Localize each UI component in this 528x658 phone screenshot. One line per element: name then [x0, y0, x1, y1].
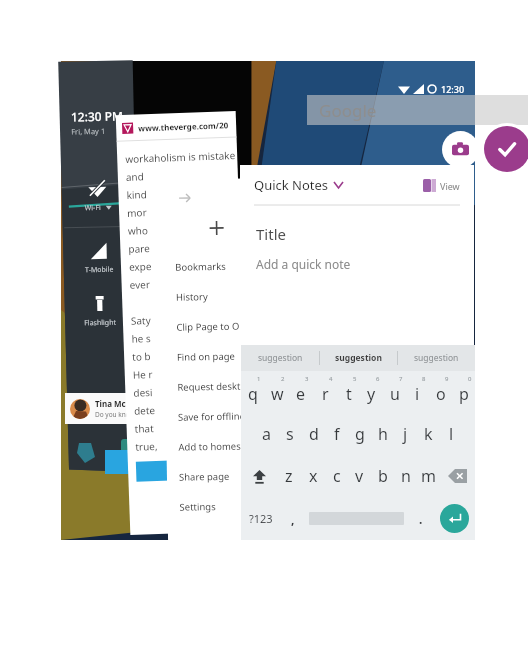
button[interactable]: Backspace	[440, 455, 475, 497]
button[interactable]: Add a quick note	[256, 256, 351, 272]
staticText: 6	[376, 375, 380, 383]
staticText: Settings	[179, 500, 217, 514]
button[interactable]: 0	[452, 371, 475, 413]
staticText: www.theverge.com/20	[138, 119, 229, 133]
staticText: e	[296, 383, 306, 405]
button[interactable]: 9	[429, 371, 452, 413]
button[interactable]: T-Mobile	[60, 241, 137, 276]
button[interactable]: b	[371, 455, 394, 497]
button[interactable]: Done	[484, 126, 528, 172]
button[interactable]: z	[277, 455, 301, 497]
button[interactable]: 6	[360, 371, 383, 413]
button[interactable]: Voice search	[501, 129, 519, 147]
button[interactable]: suggestion	[398, 345, 475, 371]
button[interactable]: suggestion	[241, 345, 319, 371]
button[interactable]: Request desktop si	[165, 370, 274, 402]
staticText: 3	[305, 375, 309, 383]
button[interactable]: Bookmark	[240, 188, 256, 205]
button[interactable]: k	[417, 413, 440, 455]
staticText: suggestion	[335, 352, 382, 364]
button[interactable]: Share page	[167, 460, 275, 492]
button[interactable]: Google	[307, 95, 528, 125]
staticText: n	[401, 465, 411, 487]
button[interactable]: 4	[313, 371, 337, 413]
button[interactable]: Enter	[440, 504, 469, 533]
button[interactable]: Save for offline rea	[166, 400, 274, 432]
button[interactable]: 2	[265, 371, 289, 413]
staticText: u	[390, 383, 400, 405]
button[interactable]: Clip Page to OneNo	[164, 310, 273, 342]
button[interactable]: Find on page	[165, 340, 273, 372]
staticText: Google	[319, 99, 377, 122]
staticText: q	[248, 383, 258, 405]
button[interactable]: Camera	[442, 131, 479, 168]
staticText: Share page	[179, 470, 230, 484]
button[interactable]: Tina McB	[65, 393, 149, 424]
staticText: h	[378, 423, 388, 445]
staticText: Find on page	[177, 350, 236, 364]
staticText: r	[322, 383, 329, 405]
button[interactable]: Title	[256, 224, 286, 244]
button[interactable]: g	[348, 413, 371, 455]
button[interactable]: 7	[383, 371, 406, 413]
button[interactable]: Add to homescreen	[166, 430, 275, 462]
button[interactable]: h	[371, 413, 394, 455]
staticText: 1	[257, 375, 261, 383]
staticText: that	[134, 421, 155, 436]
staticText: he s	[131, 331, 152, 346]
staticText: b	[378, 465, 388, 487]
button[interactable]: c	[325, 455, 348, 497]
button[interactable]: s	[278, 413, 302, 455]
staticText: suggestion	[258, 352, 303, 364]
staticText: Do you kno	[95, 410, 130, 419]
button[interactable]: .	[408, 497, 433, 540]
button[interactable]: j	[394, 413, 417, 455]
button[interactable]: suggestion	[320, 345, 397, 371]
button[interactable]: New tab	[162, 216, 271, 240]
staticText: Wi-Fi	[85, 203, 102, 213]
staticText: d	[309, 423, 319, 445]
button[interactable]: f	[325, 413, 348, 455]
staticText: w	[271, 383, 284, 405]
button[interactable]: 8	[406, 371, 429, 413]
staticText: 8	[422, 375, 426, 383]
button[interactable]: Forward	[176, 189, 192, 206]
staticText: Quick Notes	[254, 176, 329, 194]
button[interactable]: Space	[305, 497, 408, 540]
button[interactable]: History	[164, 280, 272, 312]
button[interactable]: Quick Notes	[254, 176, 343, 194]
staticText: s	[286, 423, 294, 445]
staticText: f	[334, 423, 340, 445]
staticText: o	[436, 383, 446, 405]
button[interactable]: 1	[241, 371, 265, 413]
button[interactable]: d	[302, 413, 325, 455]
staticText: ever	[129, 277, 151, 292]
staticText: Bookmarks	[175, 260, 226, 274]
staticText: 2	[281, 375, 285, 383]
button[interactable]: m	[417, 455, 440, 497]
button[interactable]: ?123	[241, 497, 280, 540]
staticText: .	[419, 511, 423, 527]
button[interactable]: Settings	[167, 490, 276, 522]
button[interactable]: Wi-Fi	[59, 177, 136, 214]
button[interactable]: v	[348, 455, 371, 497]
staticText: Saty	[131, 313, 151, 328]
button[interactable]: 5	[337, 371, 360, 413]
staticText: a	[262, 423, 271, 445]
staticText: 12:30	[441, 83, 465, 95]
button[interactable]: Flashlight	[62, 294, 138, 329]
staticText: Tina McB	[95, 398, 132, 409]
staticText: 5	[353, 375, 357, 383]
button[interactable]: 3	[289, 371, 313, 413]
button[interactable]: a	[254, 413, 278, 455]
button[interactable]: Shift	[241, 455, 277, 497]
button[interactable]: n	[394, 455, 417, 497]
button[interactable]: x	[301, 455, 325, 497]
button[interactable]: Bookmarks	[163, 250, 271, 282]
button[interactable]: ,	[280, 497, 305, 540]
staticText: k	[424, 423, 433, 445]
staticText: l	[449, 423, 454, 445]
staticText: kind	[126, 187, 148, 202]
button[interactable]: l	[440, 413, 463, 455]
button[interactable]: View	[423, 179, 460, 192]
